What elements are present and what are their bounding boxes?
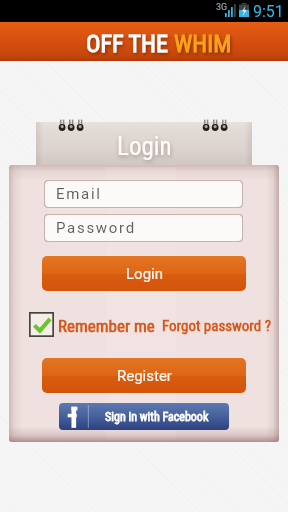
- staticText: Password: [56, 219, 136, 237]
- staticText: Sign in with Facebook: [105, 410, 209, 424]
- staticText: Email: [56, 185, 102, 203]
- staticText: 9:51: [253, 2, 284, 21]
- button[interactable]: Sign in with Facebook: [59, 403, 229, 430]
- button[interactable]: Login: [42, 256, 246, 291]
- staticText: Login: [117, 132, 172, 161]
- button[interactable]: Password: [45, 215, 242, 241]
- button[interactable]: Email: [45, 181, 242, 207]
- button[interactable]: Remember me: [58, 316, 155, 336]
- staticText: WHIM: [174, 30, 232, 58]
- button[interactable]: Remember me checkbox: [29, 312, 54, 337]
- staticText: Register: [117, 367, 172, 385]
- button[interactable]: Forgot password ?: [162, 317, 272, 335]
- staticText: Login: [126, 265, 163, 283]
- staticText: OFF THE: [86, 30, 174, 58]
- staticText: 3G: [216, 2, 228, 13]
- button[interactable]: Login: [36, 122, 252, 167]
- button[interactable]: Register: [42, 358, 246, 393]
